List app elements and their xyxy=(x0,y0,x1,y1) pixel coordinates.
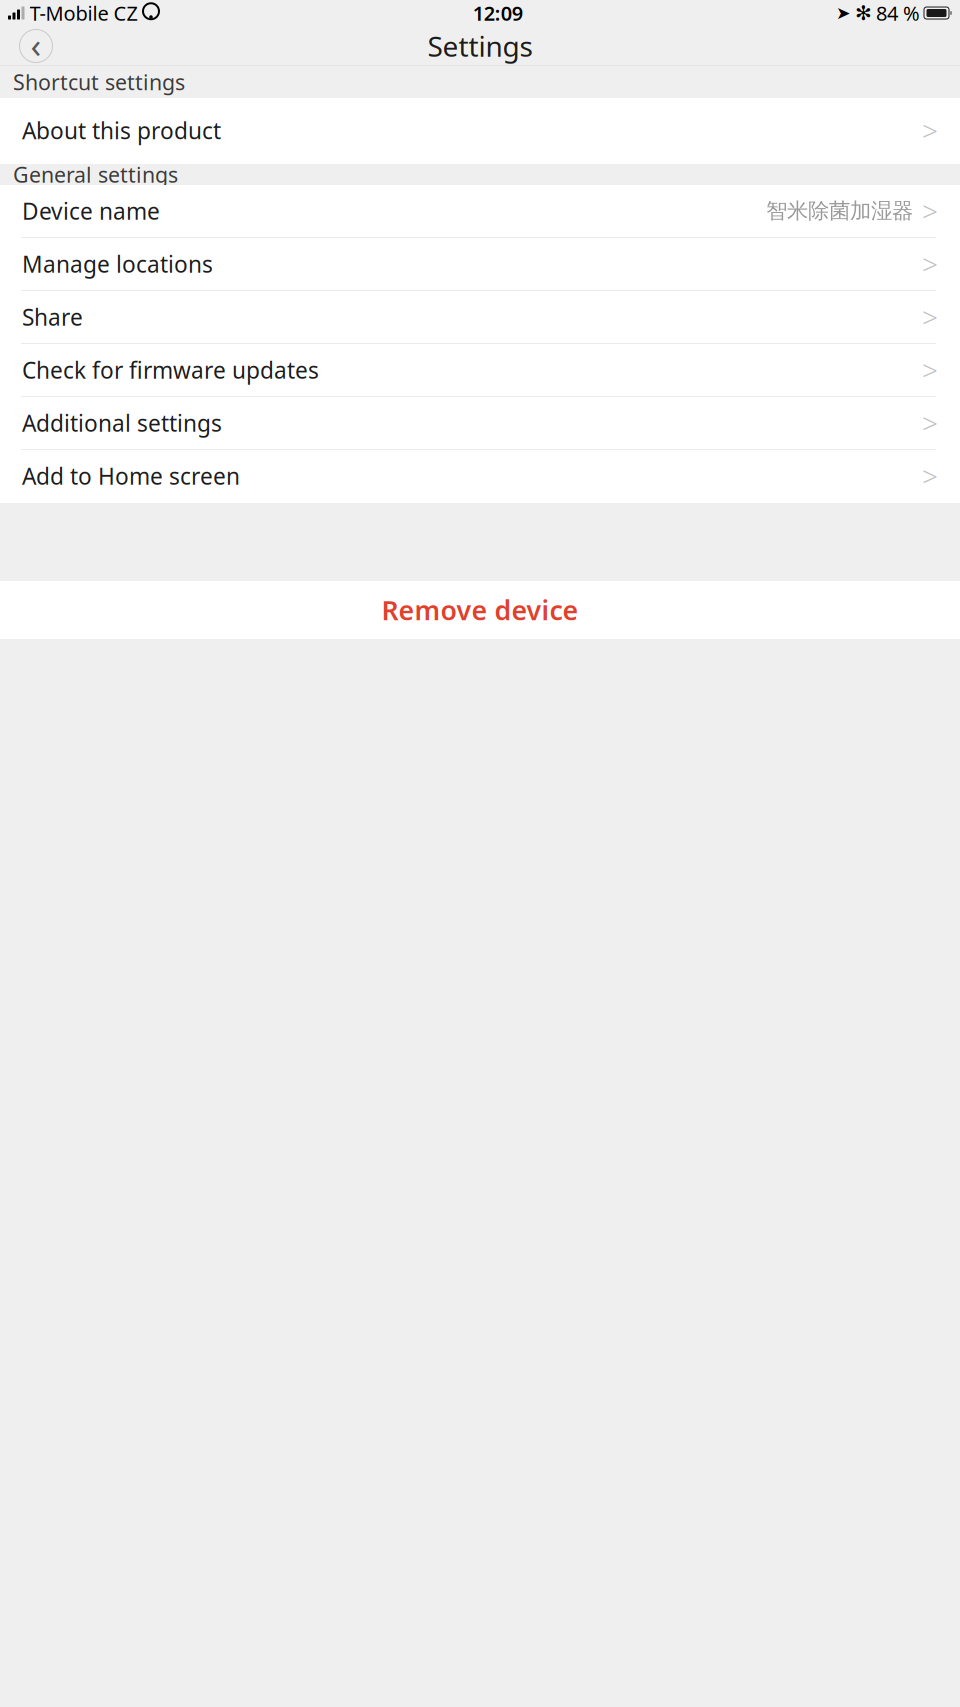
button[interactable]: Device name xyxy=(0,185,960,238)
staticText: ✻ xyxy=(855,2,872,24)
staticText: Check for firmware updates xyxy=(22,355,319,385)
staticText: > xyxy=(922,298,938,336)
staticText: 12:09 xyxy=(473,0,523,26)
button[interactable]: Share xyxy=(0,291,960,344)
staticText: > xyxy=(922,245,938,283)
button[interactable]: Remove device xyxy=(0,581,960,639)
button[interactable]: Back xyxy=(15,25,57,67)
staticText: T-Mobile CZ xyxy=(29,0,137,26)
button[interactable]: About this product xyxy=(0,98,960,164)
staticText: > xyxy=(922,351,938,389)
staticText: Settings xyxy=(427,27,532,65)
button[interactable]: Additional settings xyxy=(0,397,960,450)
staticText: > xyxy=(922,192,938,230)
staticText: About this product xyxy=(22,115,221,145)
staticText: Additional settings xyxy=(22,408,222,438)
staticText: 84 % xyxy=(876,0,920,26)
staticText: ‹ xyxy=(30,21,41,67)
button[interactable]: Add to Home screen xyxy=(0,450,960,503)
staticText: > xyxy=(922,457,938,495)
staticText: Remove device xyxy=(381,592,578,628)
staticText: Device name xyxy=(22,196,160,226)
staticText: Shortcut settings xyxy=(13,68,185,96)
staticText: General settings xyxy=(13,160,178,189)
staticText: > xyxy=(922,112,938,149)
staticText: > xyxy=(922,404,938,442)
button[interactable]: Check for firmware updates xyxy=(0,344,960,397)
staticText: ➤ xyxy=(836,3,851,23)
staticText: Manage locations xyxy=(22,249,213,279)
staticText: Add to Home screen xyxy=(22,461,240,491)
staticText: 智米除菌加湿器 xyxy=(766,198,913,224)
staticText: Share xyxy=(22,302,83,332)
button[interactable]: Manage locations xyxy=(0,238,960,291)
